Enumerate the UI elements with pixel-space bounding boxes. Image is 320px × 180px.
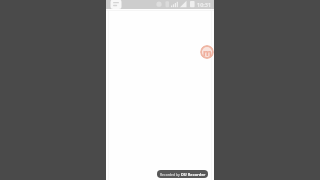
- button[interactable]: App logo: [200, 45, 214, 59]
- staticText: DU Recorder: [181, 172, 206, 177]
- button[interactable]: Recorder watermark: [157, 170, 208, 178]
- staticText: 10:31: [197, 1, 212, 8]
- staticText: m: [203, 46, 212, 58]
- staticText: Recorded by: [160, 172, 181, 177]
